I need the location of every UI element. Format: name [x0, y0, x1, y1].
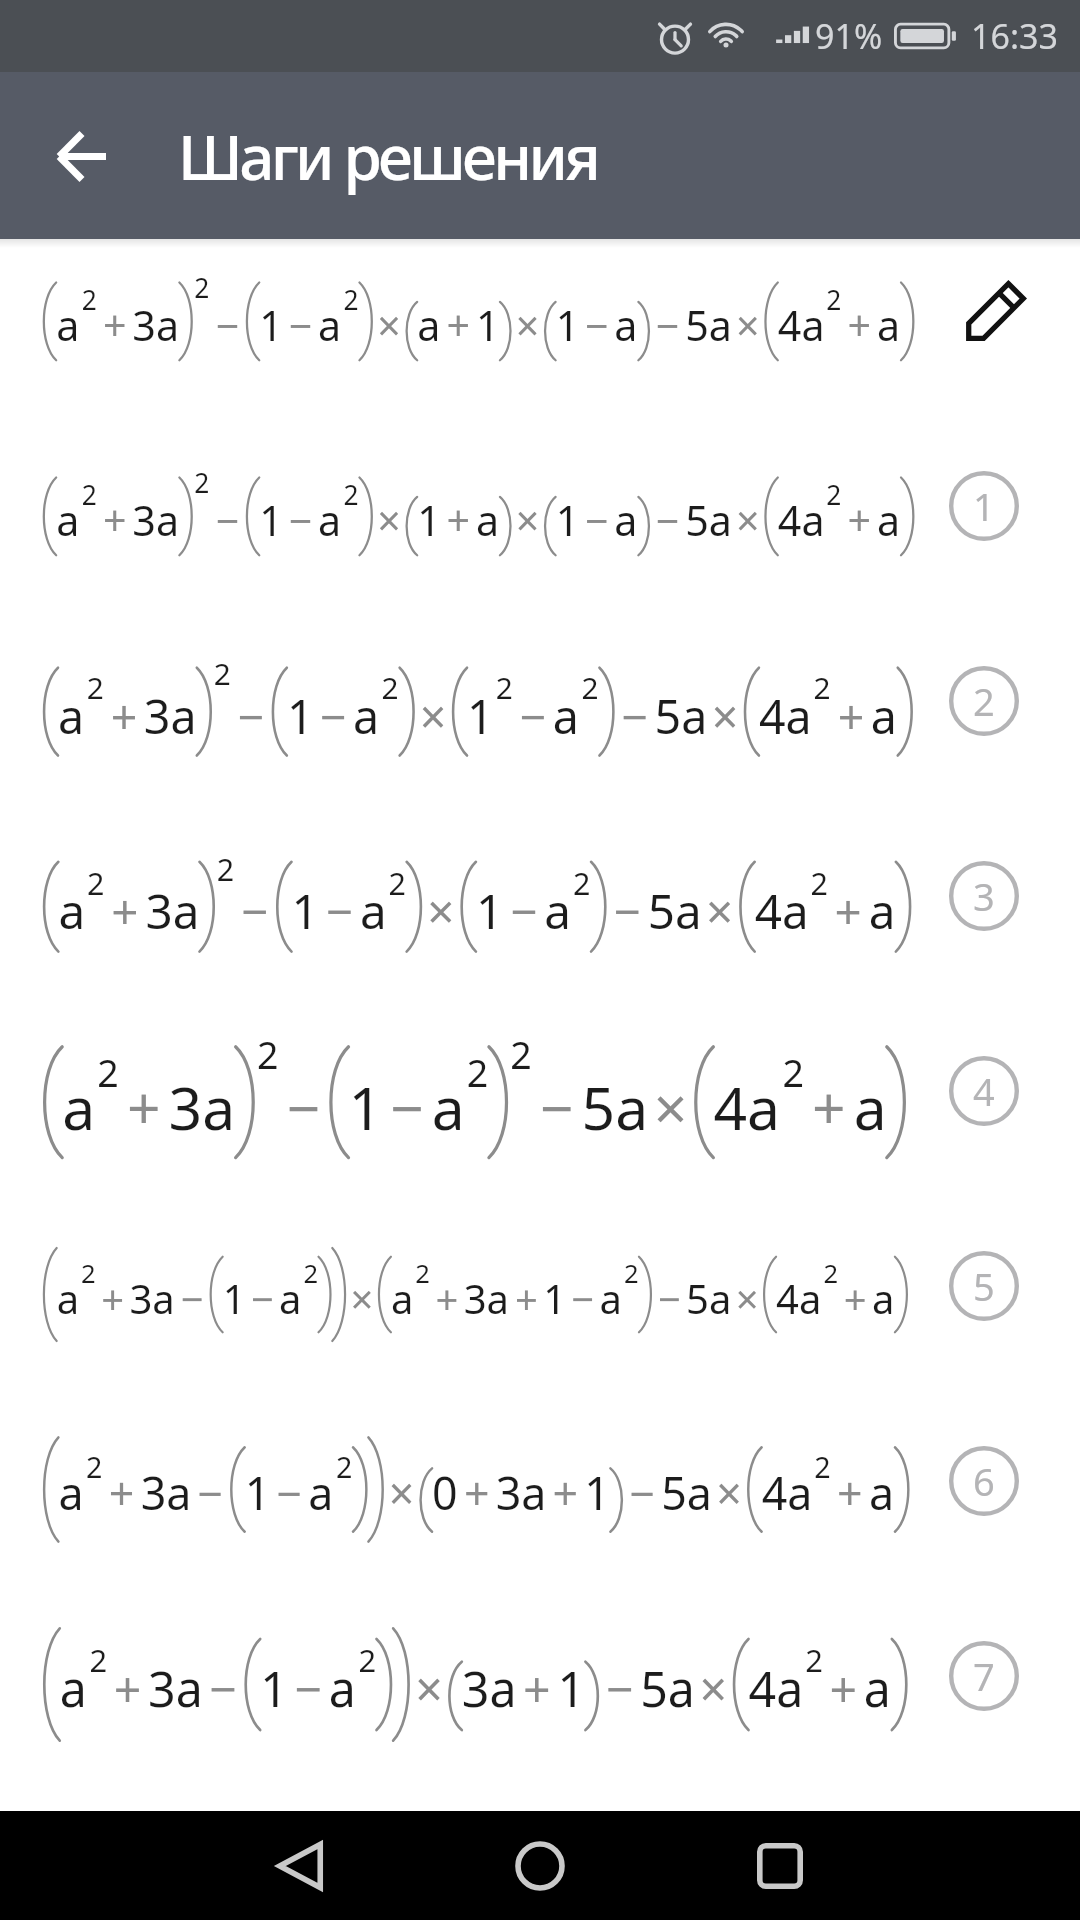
staticText: Шаги решения [178, 114, 598, 198]
staticText: 4 [973, 1065, 995, 1117]
staticText: 16:33 [971, 13, 1058, 59]
button[interactable]: Back [26, 101, 136, 211]
staticText: 1 [973, 480, 995, 532]
button[interactable]: 1 [0, 408, 1080, 603]
staticText: 6 [973, 1455, 995, 1507]
staticText: 3 [973, 870, 995, 922]
button[interactable]: 4 [0, 993, 1080, 1188]
staticText: 91% [815, 13, 883, 59]
button[interactable]: 3 [0, 798, 1080, 993]
button[interactable]: 5 [0, 1188, 1080, 1383]
staticText: 7 [973, 1650, 995, 1702]
button[interactable]: 2 [0, 603, 1080, 798]
staticText: 2 [973, 675, 995, 727]
staticText: 5 [973, 1260, 995, 1312]
button[interactable]: 7 [0, 1578, 1080, 1773]
button[interactable]: 6 [0, 1383, 1080, 1578]
button[interactable]: Edit expression [0, 213, 1080, 408]
button[interactable]: Back [225, 1811, 375, 1920]
button[interactable]: Recent apps [705, 1811, 855, 1920]
button[interactable]: Edit expression [948, 263, 1044, 359]
button[interactable]: Home [465, 1811, 615, 1920]
